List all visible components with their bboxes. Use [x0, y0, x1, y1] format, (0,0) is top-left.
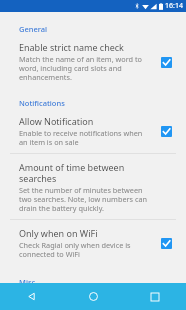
button[interactable]: Recent apps — [124, 283, 186, 310]
staticText: General — [19, 24, 186, 34]
button[interactable]: Only when on WiFi — [157, 234, 175, 252]
button[interactable]: Home — [62, 283, 124, 310]
button[interactable]: Back — [0, 283, 62, 310]
button[interactable]: Allow Notification — [0, 108, 186, 153]
staticText: 16:14 — [165, 1, 183, 11]
staticText: Notifications — [19, 98, 186, 108]
staticText: Only when on WiFi — [19, 227, 98, 239]
button[interactable]: Allow Notification — [157, 122, 175, 140]
staticText: Enable to receive notifications when an … — [19, 128, 148, 147]
button[interactable]: Enable strict name check — [0, 34, 186, 88]
staticText: Match the name of an item, word to word,… — [19, 54, 148, 82]
staticText: Set the number of minutes between two se… — [19, 185, 148, 213]
button[interactable]: Only when on WiFi — [0, 220, 186, 265]
button[interactable]: Amount of time between searches — [0, 154, 186, 219]
staticText: Check Ragial only when device is connect… — [19, 240, 148, 259]
button[interactable]: Enable strict name check — [157, 53, 175, 71]
staticText: Enable strict name check — [19, 41, 124, 53]
staticText: Allow Notification — [19, 115, 94, 127]
staticText: Misc. — [19, 277, 186, 283]
staticText: Amount of time between searches — [19, 161, 148, 184]
